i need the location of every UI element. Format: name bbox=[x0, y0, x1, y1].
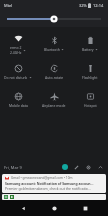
button[interactable]: Back bbox=[15, 200, 31, 216]
staticText: Premier goldmitvenabeom, check out the n… bbox=[5, 186, 91, 191]
staticText: Mobile data bbox=[9, 103, 28, 108]
button[interactable]: User bbox=[62, 164, 68, 170]
staticText: 2.4GHz bbox=[10, 50, 22, 55]
staticText: Battery bbox=[82, 47, 94, 52]
staticText: ermo 2 bbox=[10, 45, 22, 50]
button[interactable]: Mobile data bbox=[0, 86, 36, 114]
button[interactable]: Settings bbox=[85, 164, 92, 171]
button[interactable]: Hotspot bbox=[72, 86, 108, 114]
button[interactable]: Home bbox=[46, 200, 62, 216]
button[interactable]: Collapse bbox=[97, 164, 104, 171]
staticText: Gmail • gmeaoneoand@gmail.com • 10m bbox=[11, 176, 73, 180]
staticText: Bluetooth bbox=[44, 47, 60, 52]
button[interactable]: Recents bbox=[77, 200, 93, 216]
button[interactable]: Gmail • gmeaoneoand@gmail.com • 10m bbox=[2, 174, 106, 193]
button[interactable]: Bluetooth bbox=[36, 30, 72, 58]
button[interactable]: Flashlight bbox=[72, 58, 108, 86]
button[interactable]: Auto-rotate bbox=[36, 58, 72, 86]
button[interactable]: Battery bbox=[72, 30, 108, 58]
staticText: Samsung account: Notification of Samsung… bbox=[5, 181, 94, 186]
staticText: Do not disturb bbox=[4, 75, 28, 80]
button[interactable]: Brightness bbox=[0, 11, 108, 27]
button[interactable]: Do not disturb bbox=[0, 58, 36, 86]
button[interactable]: Edit bbox=[73, 164, 80, 171]
staticText: Flashlight bbox=[82, 75, 98, 80]
staticText: Mtel bbox=[4, 3, 13, 8]
staticText: Hotspot bbox=[84, 103, 97, 108]
staticText: Airplane mode bbox=[42, 103, 66, 108]
button[interactable]: Airplane mode bbox=[36, 86, 72, 114]
staticText: 32% bbox=[79, 3, 87, 8]
staticText: Fri, Mar 9 bbox=[4, 165, 22, 170]
button[interactable]: ermo 2 bbox=[0, 30, 36, 58]
staticText: Auto-rotate bbox=[45, 75, 64, 80]
staticText: 12:14 bbox=[93, 3, 104, 8]
